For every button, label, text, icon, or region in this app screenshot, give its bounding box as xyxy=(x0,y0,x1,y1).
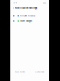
staticText: Continue xyxy=(35,71,44,73)
staticText: Allow Alerts xyxy=(20,14,35,17)
staticText: Notification Settings xyxy=(15,7,37,9)
staticText: Not Now xyxy=(15,71,25,73)
staticText: 9:41 xyxy=(13,2,17,4)
staticText: Show Badges xyxy=(20,20,32,22)
